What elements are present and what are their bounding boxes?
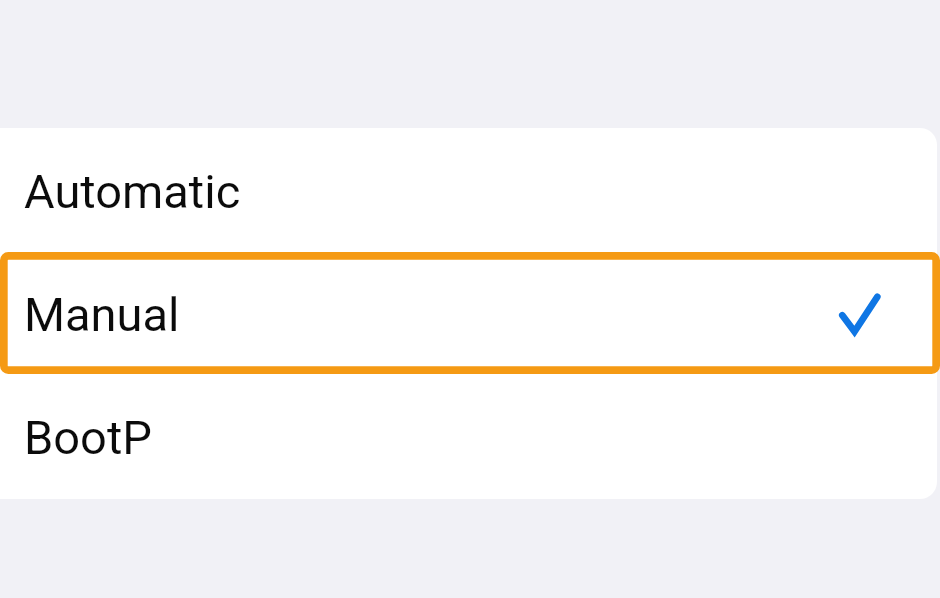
other: Selected bbox=[833, 288, 881, 340]
button[interactable]: Automatic bbox=[0, 128, 937, 252]
staticText: Automatic bbox=[24, 164, 241, 219]
button[interactable]: BootP bbox=[0, 374, 937, 498]
staticText: Manual bbox=[24, 287, 180, 342]
staticText: BootP bbox=[24, 410, 152, 465]
button[interactable]: Manual bbox=[0, 252, 937, 375]
